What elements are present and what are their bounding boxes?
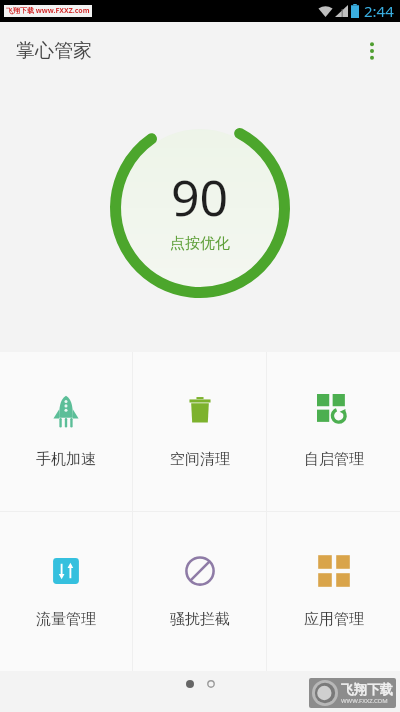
staticText: 手机加速 — [36, 450, 96, 469]
staticText: 点按优化 — [170, 234, 230, 253]
staticText: 飞翔下载 www.FXXZ.com — [6, 6, 90, 16]
button[interactable]: More options — [352, 31, 392, 71]
button[interactable]: 应用管理 — [267, 512, 400, 671]
button[interactable]: 流量管理 — [0, 512, 132, 671]
button[interactable]: 手机加速 — [0, 352, 132, 511]
staticText: 飞翔下载 — [341, 681, 393, 697]
button[interactable]: 空间清理 — [133, 352, 266, 511]
staticText: WWW.FXXZ.COM — [341, 697, 388, 705]
staticText: 掌心管家 — [16, 39, 92, 63]
staticText: 骚扰拦截 — [170, 610, 230, 629]
staticText: 应用管理 — [304, 610, 364, 629]
staticText: 2:44 — [364, 1, 394, 21]
staticText: 90 — [171, 163, 229, 231]
button[interactable]: 自启管理 — [267, 352, 400, 511]
staticText: 流量管理 — [36, 610, 96, 629]
button[interactable]: 骚扰拦截 — [133, 512, 266, 671]
staticText: 自启管理 — [304, 450, 364, 469]
staticText: 空间清理 — [170, 450, 230, 469]
